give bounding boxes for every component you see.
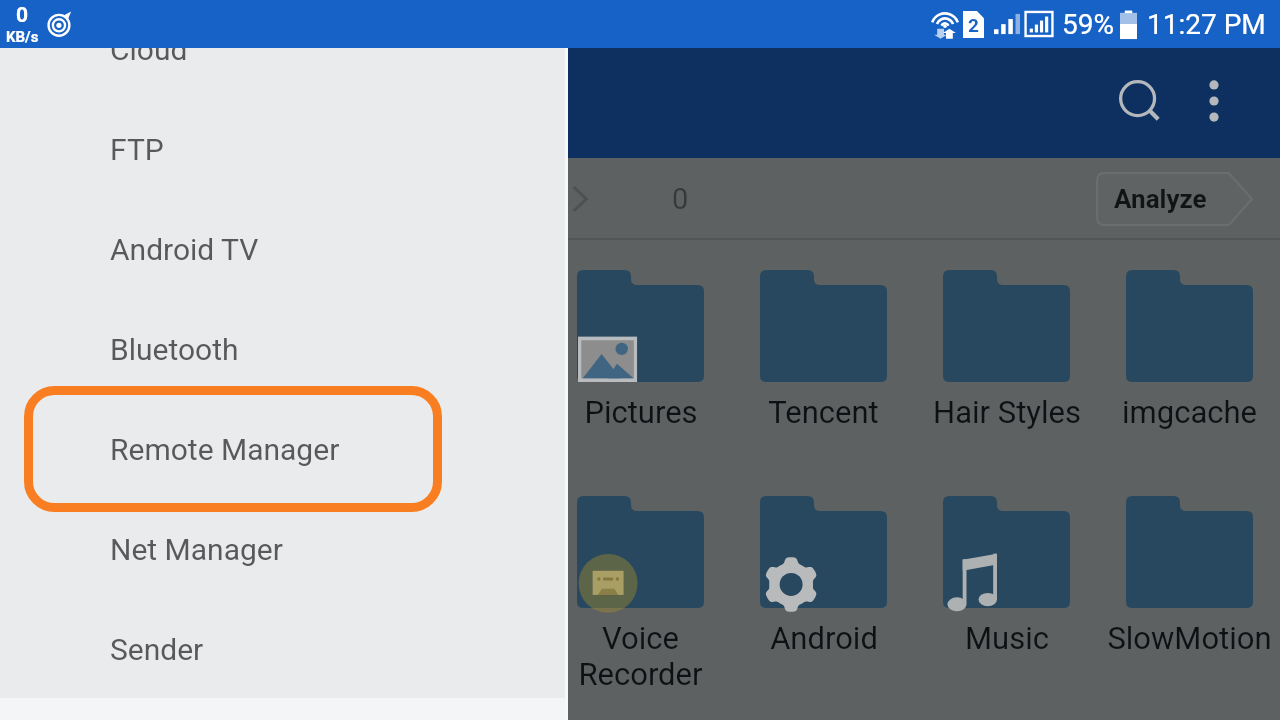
- staticText: 11:27 PM: [1147, 8, 1266, 41]
- staticText: Hair Styles: [933, 394, 1081, 430]
- staticText: Bluetooth: [110, 332, 239, 367]
- button[interactable]: Parent folder: [552, 171, 608, 227]
- staticText: 59%: [1062, 8, 1114, 41]
- button[interactable]: FTP: [0, 99, 568, 199]
- button[interactable]: Music: [915, 496, 1098, 656]
- button[interactable]: Net Manager: [0, 499, 568, 599]
- button[interactable]: Hair Styles: [915, 270, 1098, 430]
- button[interactable]: Tencent: [732, 270, 915, 430]
- staticText: Android: [770, 620, 878, 656]
- staticText: 0: [16, 3, 29, 28]
- staticText: 2: [968, 14, 979, 36]
- staticText: Net Manager: [110, 532, 283, 567]
- staticText: SlowMotion: [1107, 620, 1272, 656]
- button[interactable]: Remote Manager: [0, 399, 568, 499]
- staticText: Pictures: [584, 394, 698, 430]
- staticText: 0: [672, 182, 689, 216]
- button[interactable]: Android: [732, 496, 915, 656]
- staticText: Music: [965, 620, 1049, 656]
- button[interactable]: Voice Recorder: [549, 496, 732, 692]
- button[interactable]: Android TV: [0, 199, 568, 299]
- staticText: KB/s: [6, 28, 39, 46]
- staticText: Analyze: [1114, 184, 1207, 214]
- button[interactable]: Sender: [0, 599, 568, 699]
- button[interactable]: Cloud: [0, 0, 568, 99]
- button[interactable]: More options: [1182, 69, 1246, 133]
- staticText: Tencent: [768, 394, 879, 430]
- button[interactable]: Bluetooth: [0, 299, 568, 399]
- staticText: Cloud: [110, 32, 188, 67]
- button[interactable]: Search: [1106, 67, 1178, 139]
- staticText: imgcache: [1122, 394, 1257, 430]
- staticText: Sender: [110, 632, 204, 667]
- button[interactable]: Pictures: [549, 270, 732, 430]
- staticText: FTP: [110, 132, 164, 167]
- button[interactable]: SlowMotion: [1098, 496, 1280, 656]
- button[interactable]: imgcache: [1098, 270, 1280, 430]
- button[interactable]: Analyze: [1096, 171, 1256, 227]
- staticText: Remote Manager: [110, 432, 340, 467]
- staticText: Android TV: [110, 232, 259, 267]
- staticText: Voice Recorder: [578, 620, 703, 692]
